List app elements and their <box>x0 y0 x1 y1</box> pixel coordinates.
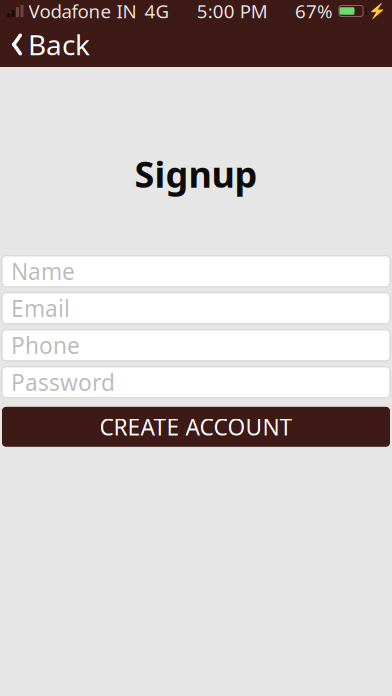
staticText: Back <box>28 26 90 63</box>
button[interactable]: Back <box>0 22 102 67</box>
staticText: Email <box>11 293 70 323</box>
staticText: CREATE ACCOUNT <box>99 412 292 442</box>
button[interactable]: CREATE ACCOUNT <box>2 407 390 447</box>
staticText: Password <box>11 367 115 397</box>
staticText: 5:00 PM <box>197 0 268 23</box>
staticText: Vodafone IN <box>28 0 136 23</box>
staticText: Signup <box>134 150 257 198</box>
staticText: Phone <box>11 330 80 360</box>
staticText: Name <box>11 256 75 286</box>
staticText: 4G <box>144 0 169 23</box>
staticText: 67% <box>295 0 333 23</box>
staticText: ⚡ <box>368 3 386 19</box>
